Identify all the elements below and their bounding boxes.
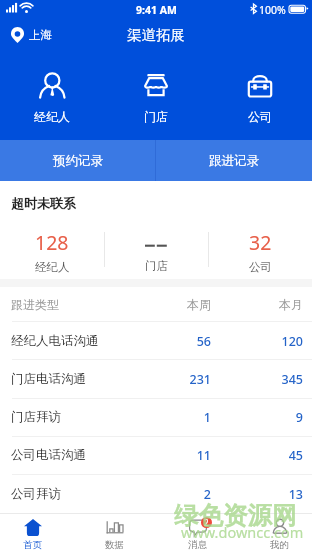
staticText: 公司	[249, 260, 272, 274]
staticText: 公司	[248, 109, 272, 124]
staticText: 345	[211, 371, 303, 388]
staticText: 100%	[259, 3, 286, 17]
staticText: 13	[211, 486, 303, 503]
staticText: 首页	[23, 539, 42, 551]
staticText: 11	[117, 447, 211, 464]
button[interactable]: 公司电话沟通	[0, 436, 312, 474]
staticText: 2	[117, 486, 211, 503]
staticText: 上海	[29, 28, 52, 42]
button[interactable]: 门店	[104, 229, 208, 273]
button[interactable]: 门店	[104, 50, 208, 140]
staticText: 超时未联系	[11, 195, 76, 211]
staticText: 9:41 AM	[136, 3, 177, 17]
button[interactable]: 128	[0, 229, 104, 274]
staticText: 门店	[144, 109, 168, 124]
staticText: 本周	[117, 297, 211, 312]
staticText: 2	[204, 517, 209, 528]
staticText: 9	[211, 409, 303, 426]
staticText: 我的	[270, 539, 289, 551]
staticText: 门店	[145, 259, 168, 273]
staticText: 公司电话沟通	[11, 447, 86, 463]
button[interactable]: 门店拜访	[0, 398, 312, 436]
staticText: 跟进类型	[11, 297, 59, 312]
staticText: 120	[211, 333, 303, 350]
button[interactable]: 我的	[257, 513, 302, 555]
staticText: 128	[35, 229, 69, 256]
button[interactable]: 32	[208, 229, 312, 274]
staticText: 消息	[188, 539, 207, 551]
button[interactable]: 预约记录	[0, 140, 155, 181]
button[interactable]: 经纪人电话沟通	[0, 322, 312, 360]
staticText: 跟进记录	[209, 153, 259, 169]
button[interactable]: 门店电话沟通	[0, 360, 312, 398]
staticText: 门店拜访	[11, 409, 61, 425]
staticText: 本月	[211, 297, 303, 312]
button[interactable]: 2	[175, 513, 220, 555]
staticText: 经纪人	[35, 260, 70, 274]
staticText: 56	[117, 333, 211, 350]
button[interactable]: 经纪人	[0, 50, 104, 140]
staticText: 32	[249, 229, 272, 256]
staticText: 预约记录	[53, 153, 103, 169]
staticText: 231	[117, 371, 211, 388]
button[interactable]: 跟进记录	[156, 140, 312, 181]
staticText: 公司拜访	[11, 486, 61, 502]
staticText: 1	[117, 409, 211, 426]
staticText: 渠道拓展	[127, 26, 185, 44]
button[interactable]: 公司拜访	[0, 475, 312, 513]
staticText: 45	[211, 447, 303, 464]
button[interactable]: 数据	[92, 513, 137, 555]
staticText: 经纪人	[34, 109, 70, 124]
staticText: www.downcc.com	[181, 522, 304, 542]
button[interactable]: 上海	[11, 27, 52, 43]
staticText: 门店电话沟通	[11, 371, 86, 387]
staticText: 绿色资源网	[174, 500, 297, 531]
button[interactable]: 公司	[208, 50, 312, 140]
button[interactable]: 首页	[10, 513, 55, 555]
staticText: 数据	[105, 539, 124, 551]
staticText: 经纪人电话沟通	[11, 333, 99, 349]
